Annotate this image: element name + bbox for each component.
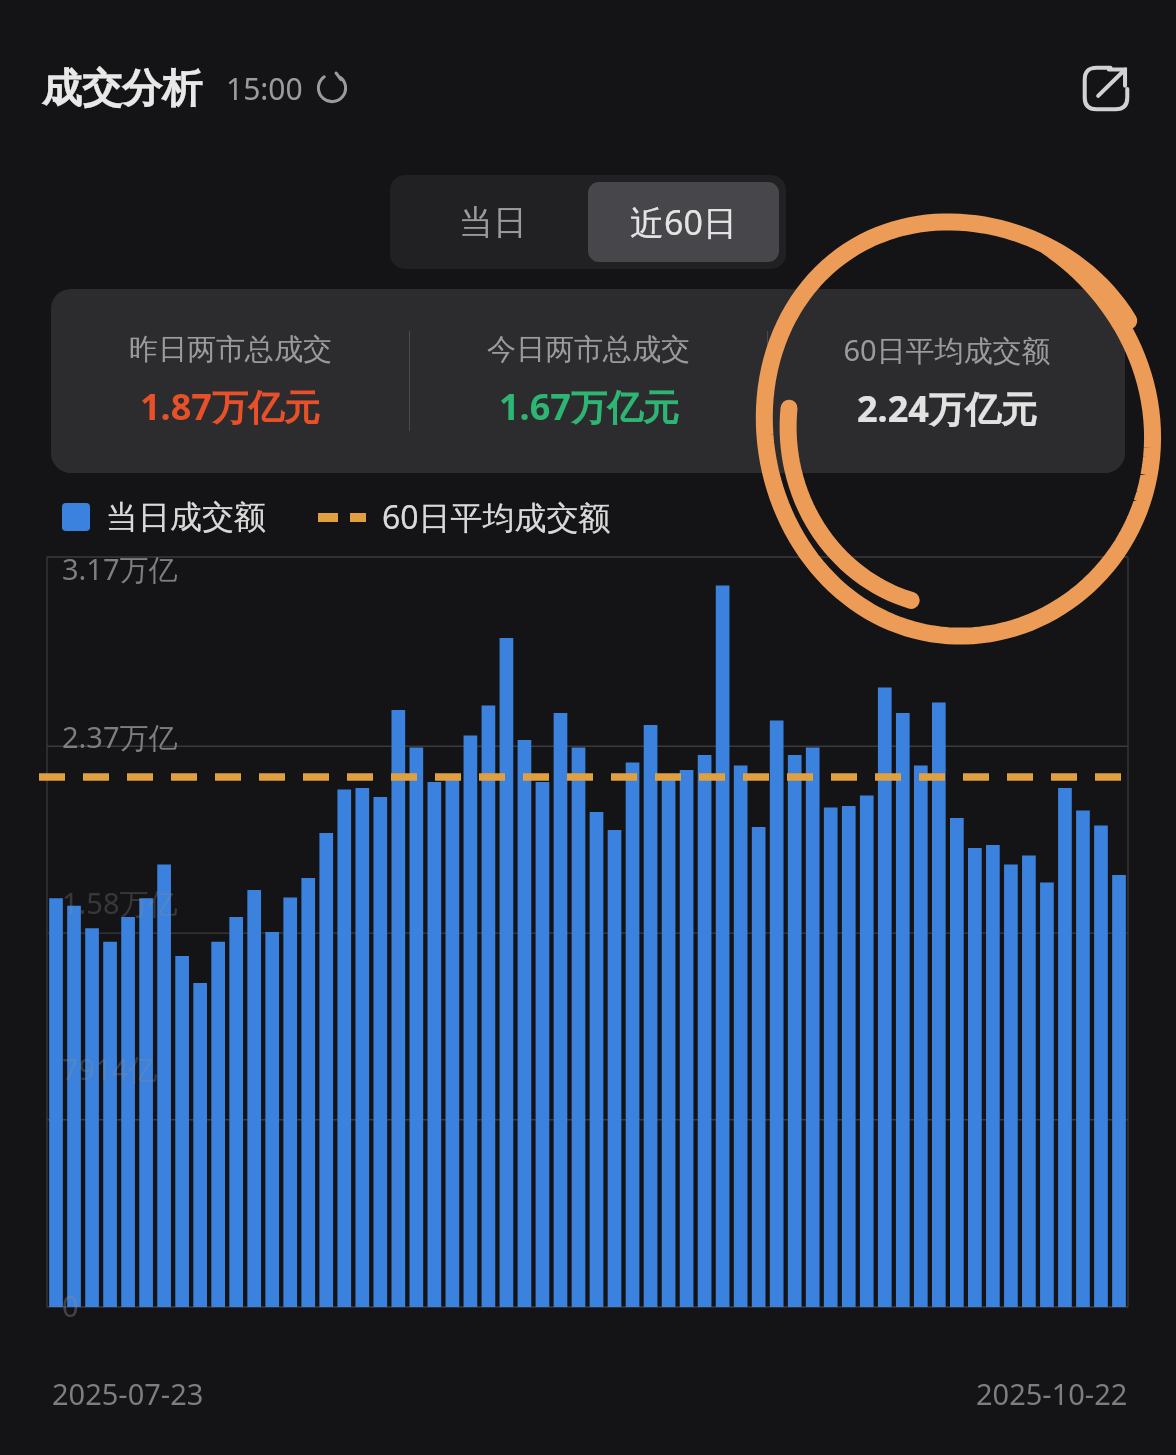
staticText: 当日	[459, 201, 527, 244]
staticText: 2.24万亿元	[857, 384, 1037, 433]
staticText: 2.37万亿	[62, 717, 178, 757]
staticText: 1.58万亿	[62, 883, 178, 923]
button[interactable]: Refresh	[315, 71, 349, 105]
staticText: 60日平均成交额	[843, 330, 1051, 370]
staticText: 1.87万亿元	[140, 382, 320, 431]
button[interactable]: 今日两市总成交	[410, 289, 767, 473]
button[interactable]: 昨日两市总成交	[51, 289, 409, 473]
staticText: 今日两市总成交	[487, 331, 690, 368]
staticText: 60日平均成交额	[382, 495, 611, 539]
staticText: 2025-10-22	[976, 1374, 1128, 1413]
staticText: 15:00	[226, 68, 303, 109]
staticText: 2025-07-23	[52, 1374, 204, 1413]
staticText: 0	[62, 1286, 79, 1325]
staticText: 1.67万亿元	[499, 382, 679, 431]
staticText: 昨日两市总成交	[129, 331, 332, 368]
button[interactable]: Open externally	[1078, 60, 1134, 116]
button[interactable]: 当日	[397, 182, 588, 262]
staticText: 成交分析	[42, 63, 202, 113]
button[interactable]: 60日平均成交额	[768, 289, 1125, 473]
staticText: 3.17万亿	[62, 549, 178, 589]
staticText: 7914亿	[62, 1049, 158, 1089]
staticText: 近60日	[630, 199, 737, 245]
button[interactable]: 近60日	[588, 182, 779, 262]
staticText: 当日成交额	[106, 497, 266, 537]
